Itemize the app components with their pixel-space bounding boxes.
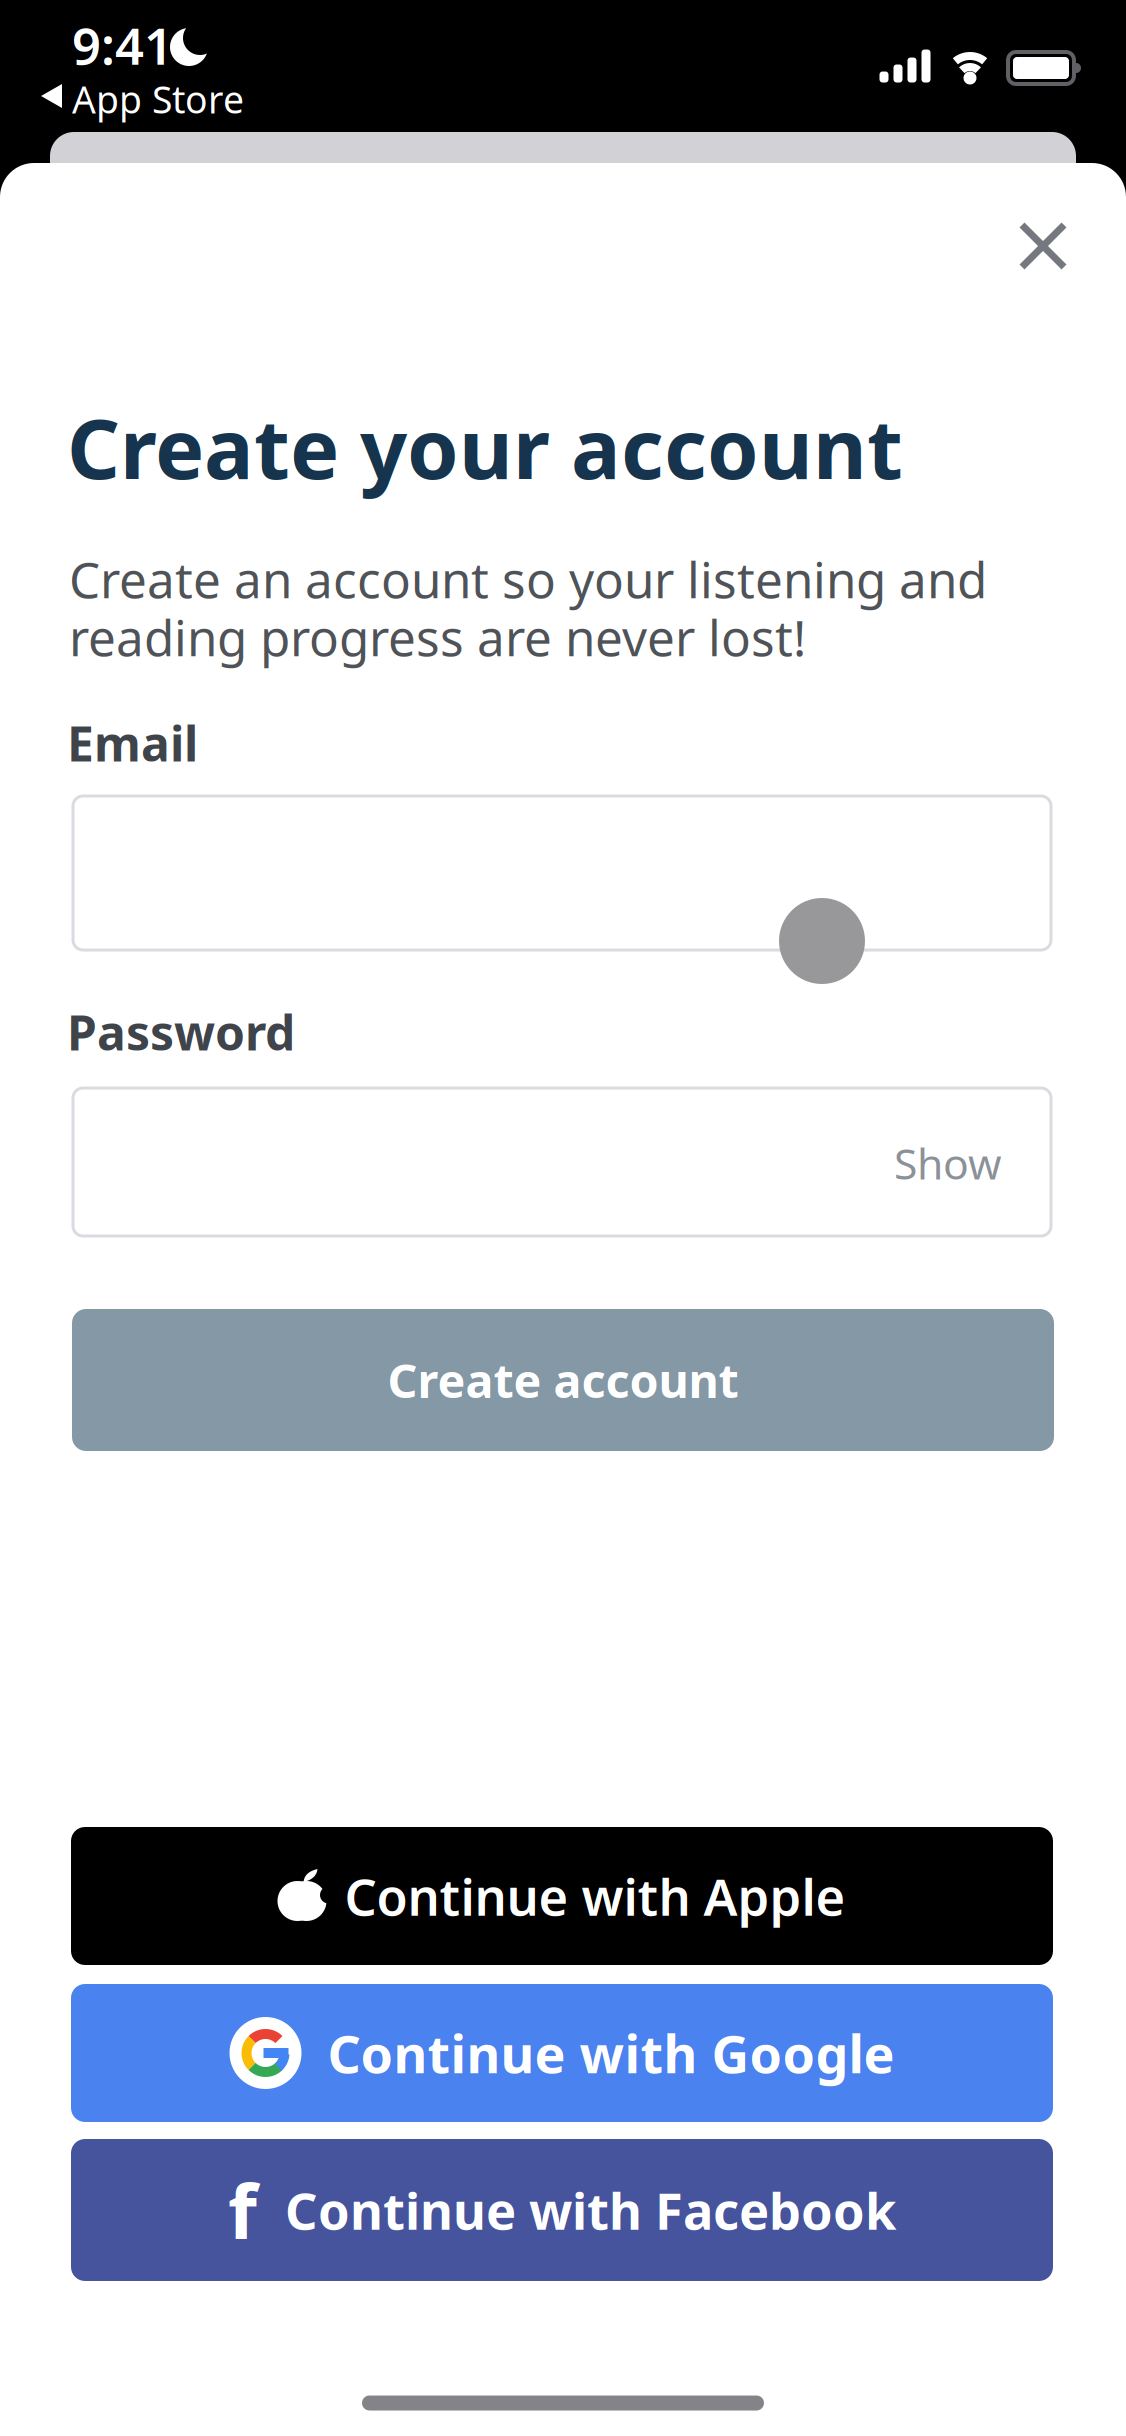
button[interactable]: Close [1018,221,1068,271]
staticText: Create an account so your listening and [69,546,987,612]
staticText: Password [67,1000,295,1064]
staticText: Email [67,711,198,775]
button[interactable]: Create account [72,1309,1054,1451]
staticText: Show [894,1135,1002,1191]
button[interactable]: f [71,2139,1053,2281]
staticText: Continue with Facebook [285,2176,896,2244]
staticText: App Store [72,74,244,124]
staticText: Continue with Google [327,2018,894,2088]
staticText: 9:41 [72,11,173,79]
staticText: Create your account [67,392,903,502]
staticText: f [228,2160,257,2260]
button[interactable]: Continue with Apple [71,1827,1053,1965]
staticText: Create account [387,1349,738,1411]
button[interactable]: Show [894,1135,1002,1191]
button[interactable]: Continue with Google [71,1984,1053,2122]
staticText: reading progress are never lost! [69,604,806,670]
staticText: Continue with Apple [344,1862,845,1930]
